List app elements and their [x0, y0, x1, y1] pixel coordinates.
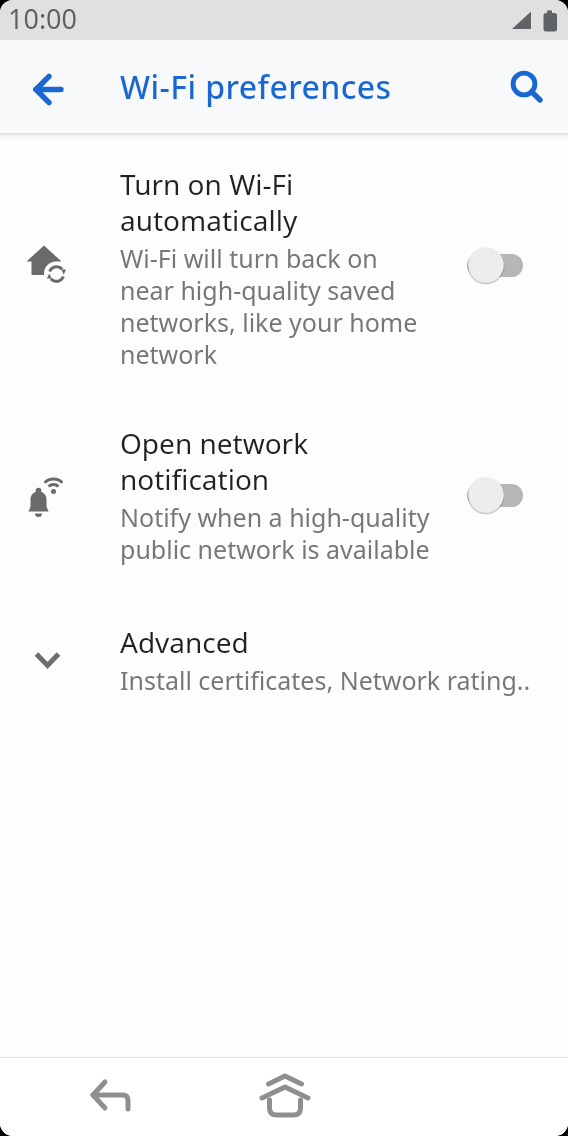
- button[interactable]: Turn on Wi-Fi automatically: [0, 141, 568, 400]
- button[interactable]: [467, 476, 523, 514]
- staticText: Install certificates, Network rating..: [120, 663, 531, 697]
- button[interactable]: Open network notification: [0, 400, 568, 595]
- button[interactable]: [20, 59, 76, 115]
- button[interactable]: [84, 1069, 140, 1125]
- staticText: Turn on Wi-Fi automatically: [120, 165, 298, 239]
- staticText: Wi-Fi preferences: [120, 65, 392, 109]
- staticText: 10:00: [8, 0, 78, 37]
- button[interactable]: Advanced: [0, 595, 568, 726]
- staticText: Wi-Fi will turn back on near high-qualit…: [120, 241, 418, 371]
- button[interactable]: [257, 1069, 313, 1125]
- staticText: Advanced: [120, 623, 249, 661]
- button[interactable]: [499, 59, 555, 115]
- staticText: Open network notification: [120, 424, 309, 498]
- staticText: Notify when a high-quality public networ…: [120, 500, 430, 566]
- button[interactable]: [467, 246, 523, 284]
